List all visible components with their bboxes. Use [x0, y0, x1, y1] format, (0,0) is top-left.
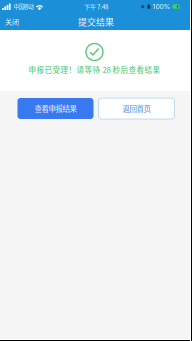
staticText: 返回首页	[122, 103, 150, 114]
button[interactable]: 关闭	[0, 13, 25, 30]
staticText: 100%	[152, 2, 170, 11]
staticText: 查看申报结果	[34, 103, 76, 114]
staticText: 申报已受理！请等待 28 秒后查看结果	[28, 64, 160, 75]
button[interactable]: 查看申报结果	[17, 98, 93, 119]
staticText: 关闭	[5, 16, 19, 26]
staticText: 中国移动	[13, 3, 33, 10]
staticText: 下午 7:48	[84, 2, 108, 11]
staticText: 提交结果	[78, 15, 114, 28]
button[interactable]: 返回首页	[98, 98, 174, 119]
